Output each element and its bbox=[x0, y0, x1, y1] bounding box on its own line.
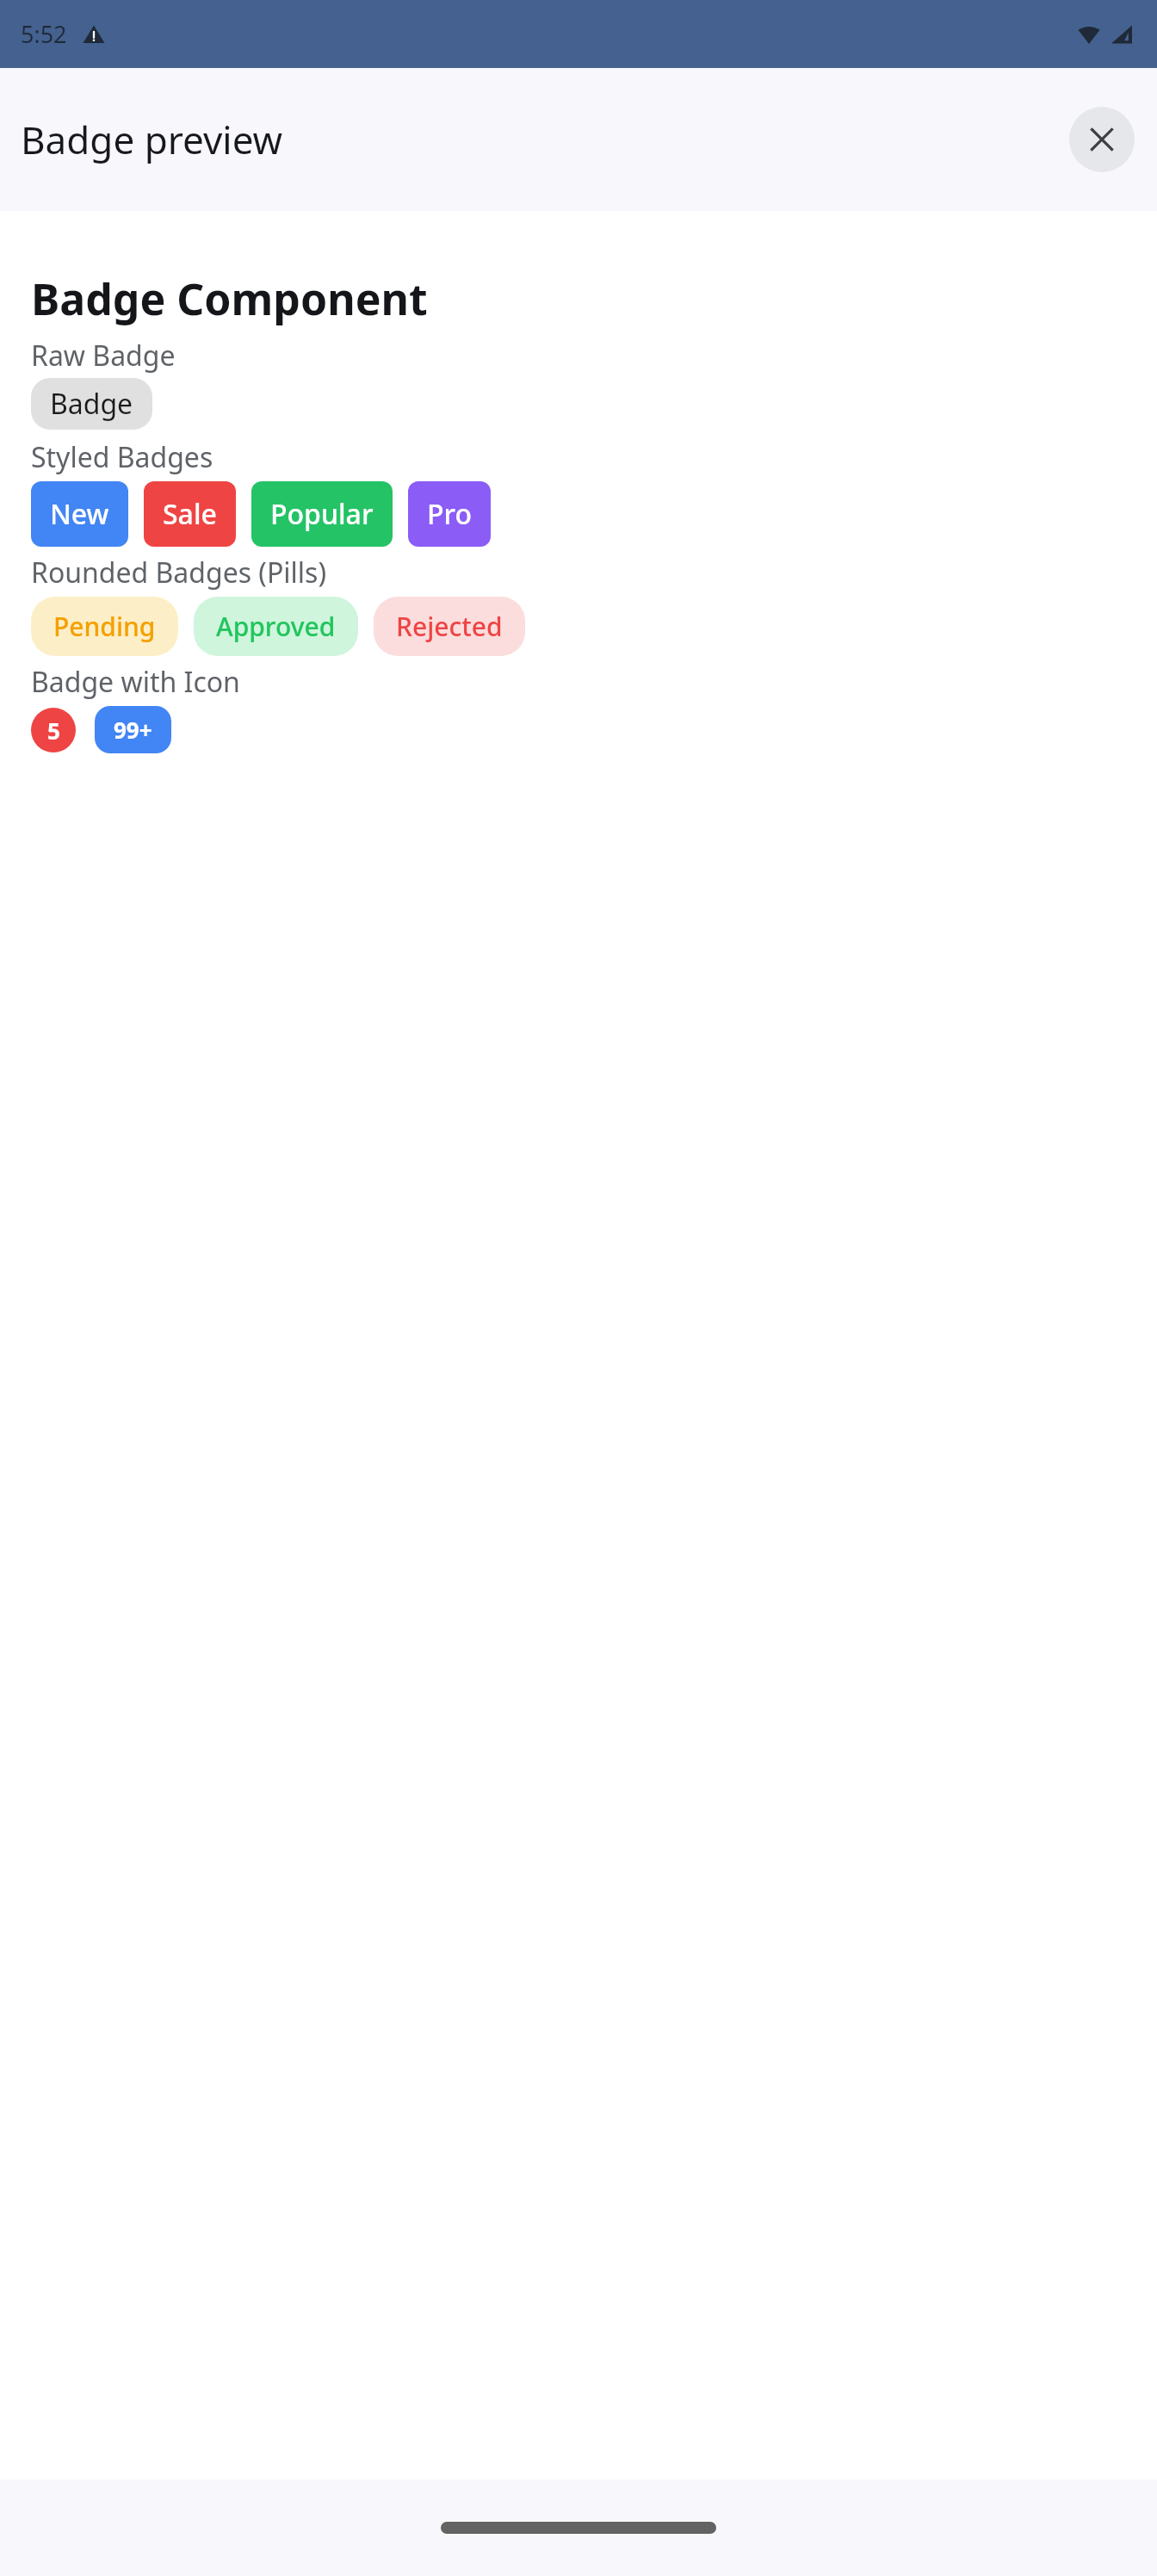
staticText: New bbox=[50, 495, 109, 533]
staticText: Rounded Badges (Pills) bbox=[31, 554, 327, 591]
button[interactable]: Sale bbox=[144, 481, 236, 547]
button[interactable]: Approved bbox=[194, 597, 358, 656]
button[interactable]: Pro bbox=[408, 481, 491, 547]
staticText: Badge preview bbox=[21, 114, 283, 165]
staticText: Badge Component bbox=[31, 269, 428, 328]
staticText: Raw Badge bbox=[31, 337, 176, 375]
button[interactable]: New bbox=[31, 481, 128, 547]
button[interactable]: Badge bbox=[31, 378, 152, 430]
staticText: 5:52 bbox=[21, 18, 67, 50]
staticText: Pending bbox=[53, 609, 156, 644]
staticText: Popular bbox=[270, 495, 374, 533]
button[interactable]: 5 bbox=[31, 708, 76, 752]
button[interactable]: Pending bbox=[31, 597, 178, 656]
staticText: Approved bbox=[216, 609, 336, 644]
staticText: Rejected bbox=[396, 609, 503, 644]
staticText: Badge bbox=[50, 385, 133, 423]
button[interactable]: Popular bbox=[251, 481, 393, 547]
staticText: Pro bbox=[427, 495, 472, 533]
staticText: 99+ bbox=[114, 715, 152, 745]
staticText: Sale bbox=[163, 495, 217, 533]
button[interactable]: Rejected bbox=[374, 597, 525, 656]
staticText: Styled Badges bbox=[31, 438, 213, 476]
button[interactable]: 99+ bbox=[95, 706, 171, 753]
staticText: 5 bbox=[47, 715, 60, 746]
button[interactable]: Close bbox=[1069, 107, 1135, 172]
staticText: Badge with Icon bbox=[31, 663, 240, 701]
